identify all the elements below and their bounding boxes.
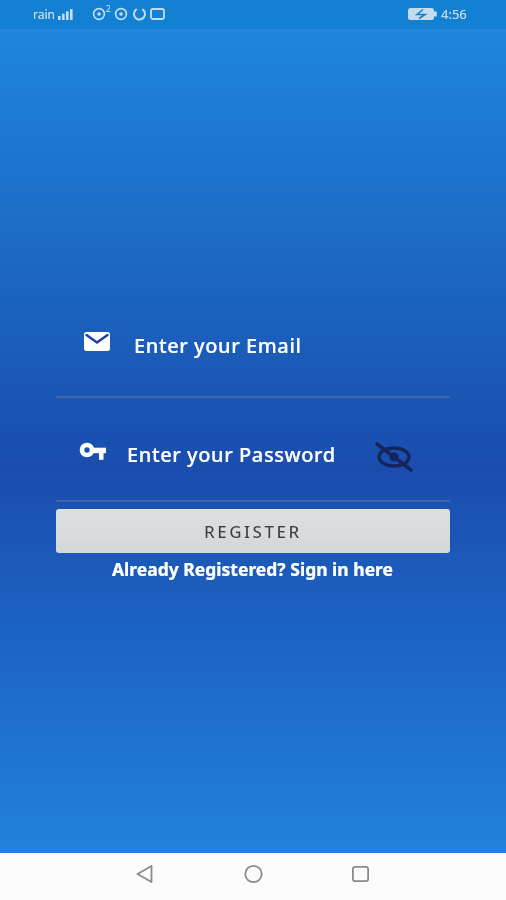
- button[interactable]: [244, 865, 263, 883]
- staticText: 4:56: [441, 5, 467, 23]
- button[interactable]: Enter your Password: [56, 430, 450, 488]
- button[interactable]: [135, 865, 155, 883]
- staticText: REGISTER: [204, 520, 302, 543]
- staticText: Enter your Password: [127, 441, 336, 468]
- staticText: rain: [33, 6, 55, 22]
- button[interactable]: [352, 866, 369, 882]
- button[interactable]: REGISTER: [56, 509, 450, 553]
- staticText: Enter your Email: [134, 332, 302, 359]
- button[interactable]: [376, 441, 416, 473]
- staticText: 2: [106, 3, 111, 14]
- button[interactable]: Enter your Email: [56, 318, 450, 378]
- button[interactable]: Already Registered? Sign in here: [112, 557, 394, 581]
